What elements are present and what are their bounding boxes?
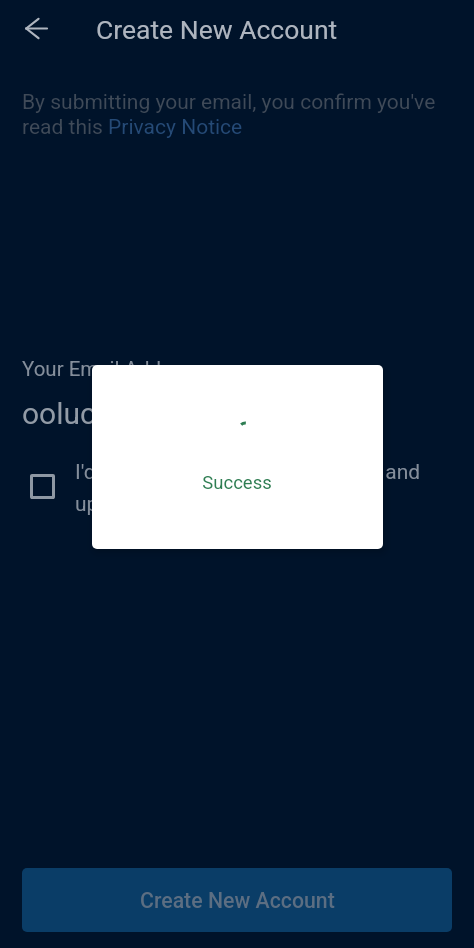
- staticText: Your Email Address: [22, 357, 200, 381]
- staticText: I'd like to receive exclusive offers and…: [75, 460, 452, 516]
- button[interactable]: Create New Account: [22, 868, 452, 932]
- button[interactable]: I'd like to receive exclusive offers and…: [30, 460, 452, 516]
- staticText: By submitting your email, you confirm yo…: [22, 90, 452, 140]
- staticText: Success: [202, 472, 272, 494]
- button[interactable]: Back: [13, 4, 57, 48]
- staticText: Create New Account: [140, 888, 335, 913]
- staticText: Create New Account: [96, 14, 338, 45]
- staticText: ooluchi.nwoko@gmail.com: [22, 396, 385, 431]
